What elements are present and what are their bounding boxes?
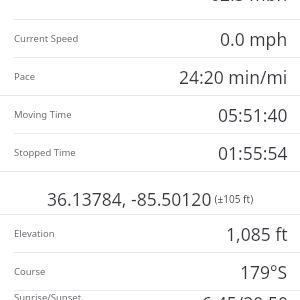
staticText: 62.3 mph bbox=[210, 0, 288, 1]
button[interactable]: Moving Time bbox=[0, 96, 300, 133]
staticText: 0.0 mph bbox=[220, 27, 288, 51]
staticText: 6:45/20:50 bbox=[202, 291, 288, 300]
staticText: 1,085 ft bbox=[226, 222, 288, 246]
button[interactable]: Stopped Time bbox=[0, 134, 300, 171]
staticText: Pace bbox=[14, 70, 35, 83]
staticText: 179°S bbox=[240, 260, 288, 284]
button[interactable]: Course bbox=[0, 253, 300, 290]
staticText: Stopped Time bbox=[14, 146, 76, 159]
staticText: Sunrise/Sunset bbox=[14, 291, 82, 300]
staticText: 05:51:40 bbox=[218, 103, 288, 127]
staticText: (±105 ft) bbox=[212, 192, 254, 206]
button[interactable]: Current Speed bbox=[0, 20, 300, 57]
staticText: Course bbox=[14, 265, 46, 278]
button[interactable]: Elevation bbox=[0, 215, 300, 252]
button[interactable]: Pace bbox=[0, 58, 300, 95]
staticText: Current Speed bbox=[14, 32, 79, 45]
staticText: Moving Time bbox=[14, 108, 72, 121]
button[interactable]: Max Speed bbox=[0, 0, 300, 19]
button[interactable]: Sunrise/Sunset bbox=[0, 291, 300, 300]
staticText: 01:55:54 bbox=[218, 141, 288, 165]
staticText: Elevation bbox=[14, 227, 55, 240]
staticText: 36.13784, -85.50120 bbox=[47, 187, 212, 211]
button[interactable]: 36.13784, -85.50120 bbox=[0, 172, 300, 214]
staticText: 24:20 min/mi bbox=[179, 65, 288, 89]
